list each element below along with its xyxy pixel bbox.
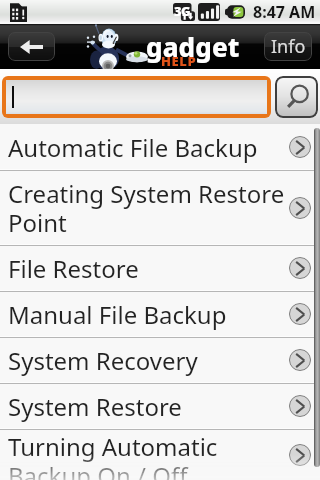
staticText: Automatic File Backup [8,131,287,164]
button[interactable]: Automatic File Backup [0,125,320,169]
button[interactable]: Creating System Restore Point [0,171,320,244]
staticText: Info [271,34,306,59]
button[interactable] [6,80,267,114]
button[interactable]: Turning Automatic Backup On / Off [0,430,320,480]
staticText: 3G [174,2,191,20]
staticText: HELP [161,52,197,70]
button[interactable]: Back [8,32,55,61]
button[interactable]: Info [264,32,312,61]
button[interactable]: Manual File Backup [0,292,320,336]
staticText: gadget [146,29,240,64]
staticText: 8:47 AM [253,1,316,23]
staticText: System Restore [8,390,287,423]
button[interactable]: System Recovery [0,338,320,382]
staticText: Creating System Restore Point [8,177,287,239]
staticText: File Restore [8,252,287,285]
button[interactable]: File Restore [0,246,320,290]
button[interactable]: Search [275,76,318,118]
staticText: Turning Automatic Backup On / Off [8,430,287,480]
staticText: System Recovery [8,344,287,377]
button[interactable]: System Restore [0,384,320,428]
staticText: Manual File Backup [8,298,287,331]
